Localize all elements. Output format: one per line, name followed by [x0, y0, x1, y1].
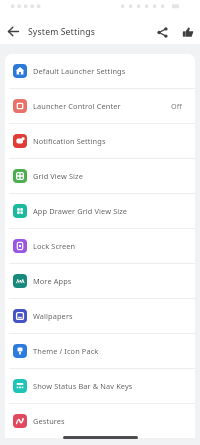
- button[interactable]: Wallpapers: [5, 299, 195, 333]
- button[interactable]: [0, 19, 26, 44]
- button[interactable]: Launcher Control Center: [5, 89, 195, 123]
- staticText: Theme / Icon Pack: [33, 346, 99, 356]
- button[interactable]: App Drawer Grid View Size: [5, 194, 195, 228]
- button[interactable]: More Apps: [5, 264, 195, 298]
- staticText: More Apps: [33, 276, 72, 286]
- button[interactable]: Gestures: [5, 404, 195, 438]
- staticText: Default Launcher Settings: [33, 66, 126, 76]
- staticText: Notification Settings: [33, 136, 106, 146]
- button[interactable]: Grid View Size: [5, 159, 195, 193]
- staticText: Launcher Control Center: [33, 101, 121, 111]
- staticText: Grid View Size: [33, 171, 83, 181]
- staticText: Gestures: [33, 416, 65, 426]
- staticText: Off: [171, 101, 182, 111]
- button[interactable]: [151, 21, 173, 43]
- button[interactable]: Default Launcher Settings: [5, 54, 195, 88]
- staticText: Wallpapers: [33, 311, 73, 321]
- button[interactable]: [177, 21, 199, 43]
- staticText: App Drawer Grid View Size: [33, 206, 128, 216]
- button[interactable]: Show Status Bar & Nav Keys: [5, 369, 195, 403]
- button[interactable]: Notification Settings: [5, 124, 195, 158]
- staticText: Show Status Bar & Nav Keys: [33, 381, 133, 391]
- staticText: Lock Screen: [33, 241, 76, 251]
- button[interactable]: Theme / Icon Pack: [5, 334, 195, 368]
- staticText: System Settings: [28, 26, 95, 38]
- button[interactable]: Lock Screen: [5, 229, 195, 263]
